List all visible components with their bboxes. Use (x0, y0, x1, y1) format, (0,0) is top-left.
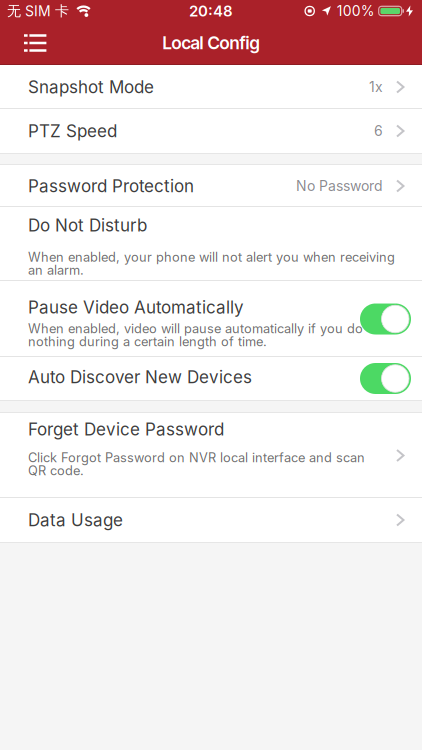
staticText: Do Not Disturb (28, 215, 147, 236)
staticText: 1x (369, 78, 383, 95)
button[interactable]: Password Protection (0, 165, 422, 207)
staticText: Forget Device Password (28, 419, 224, 440)
button[interactable]: Data Usage (0, 498, 422, 542)
staticText: No Password (296, 177, 383, 194)
button[interactable]: PTZ Speed (0, 109, 422, 153)
staticText: Click Forgot Password on NVR local inter… (28, 451, 365, 477)
staticText: Password Protection (28, 176, 194, 196)
staticText: Local Config (162, 32, 259, 53)
button[interactable]: Auto Discover New Devices (0, 357, 422, 400)
staticText: When enabled, your phone will not alert … (28, 251, 395, 277)
staticText: 6 (374, 122, 383, 139)
button[interactable]: Pause Video Automatically (0, 281, 422, 357)
staticText: Auto Discover New Devices (28, 367, 252, 387)
staticText: Snapshot Mode (28, 77, 154, 97)
button[interactable]: Snapshot Mode (0, 65, 422, 109)
staticText: When enabled, video will pause automatic… (28, 322, 363, 348)
button[interactable]: Forget Device Password (0, 413, 422, 498)
button[interactable]: Do Not Disturb (0, 207, 422, 281)
staticText: 100% (337, 2, 375, 19)
staticText: 20:48 (189, 2, 233, 20)
button[interactable]: Menu (0, 22, 46, 64)
staticText: PTZ Speed (28, 121, 117, 141)
staticText: Pause Video Automatically (28, 297, 244, 318)
staticText: 无 SIM 卡 (7, 2, 69, 20)
staticText: Data Usage (28, 510, 123, 530)
